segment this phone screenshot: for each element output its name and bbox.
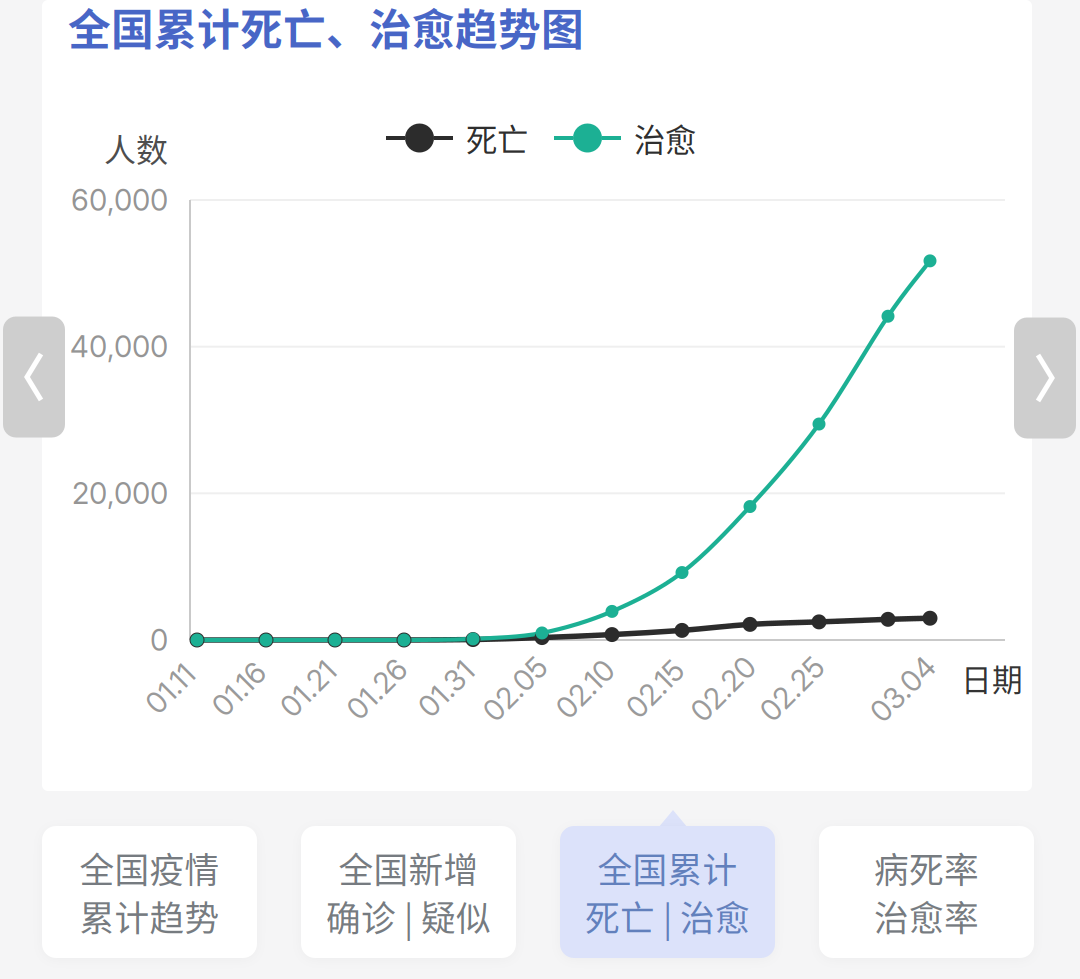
staticText: 02.05 xyxy=(476,671,553,707)
button[interactable]: Previous chart xyxy=(3,316,65,437)
staticText: 01.21 xyxy=(275,671,340,707)
button[interactable]: Next chart xyxy=(1014,317,1076,438)
staticText: 01.26 xyxy=(341,671,413,707)
button[interactable]: 全国疫情 xyxy=(42,826,257,958)
staticText: 全国累计 xyxy=(597,843,737,893)
staticText: 20,000 xyxy=(72,476,168,511)
button[interactable]: 全国累计 xyxy=(560,826,775,958)
staticText: 累计趋势 xyxy=(79,891,219,941)
staticText: 02.15 xyxy=(621,671,689,707)
staticText: 02.25 xyxy=(753,671,830,707)
staticText: 死亡 | 治愈 xyxy=(585,891,750,941)
staticText: 40,000 xyxy=(70,329,168,364)
staticText: 01.11 xyxy=(142,671,198,707)
staticText: 60,000 xyxy=(71,182,168,218)
staticText: 人数 xyxy=(104,125,168,171)
staticText: 02.20 xyxy=(684,671,762,707)
button[interactable]: 病死率 xyxy=(819,826,1034,958)
staticText: 全国疫情 xyxy=(79,843,219,893)
staticText: 治愈率 xyxy=(874,891,979,941)
button[interactable]: 全国新增 xyxy=(301,826,516,958)
staticText: 死亡 xyxy=(466,115,528,161)
staticText: 01.16 xyxy=(207,671,270,707)
staticText: 全国新增 xyxy=(338,843,478,893)
staticText: 日期 xyxy=(961,656,1023,700)
staticText: 病死率 xyxy=(874,843,979,893)
staticText: 治愈 xyxy=(634,115,696,161)
staticText: 0 xyxy=(150,622,168,658)
staticText: 02.10 xyxy=(550,671,619,707)
staticText: 03.04 xyxy=(863,671,942,707)
staticText: 01.31 xyxy=(413,671,478,707)
staticText: 全国累计死亡、治愈趋势图 xyxy=(68,0,584,58)
staticText: 确诊 | 疑似 xyxy=(326,891,491,941)
